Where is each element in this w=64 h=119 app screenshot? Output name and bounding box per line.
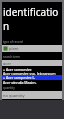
button[interactable]: no quantity	[2, 91, 62, 99]
staticText: Acer ginnala Maxim.	[3, 80, 37, 84]
button[interactable]: + Acer campestre	[2, 67, 62, 71]
staticText: type of record	[3, 40, 23, 44]
staticText: + Acer campestre	[3, 67, 32, 71]
staticText: search term	[3, 55, 20, 59]
staticText: quantity	[3, 86, 15, 90]
staticText: acer	[3, 61, 12, 66]
button[interactable]: + Acer campestre L.	[2, 75, 62, 80]
staticText: + Acer campestre L.	[3, 75, 36, 80]
button[interactable]: acer	[2, 60, 62, 66]
button[interactable]: Acer ginnala Maxim.	[2, 80, 62, 84]
button[interactable]: Acer campestre ssp. leiocarpum	[2, 71, 62, 75]
staticText: plant	[9, 46, 19, 51]
staticText: identification	[3, 5, 62, 33]
button[interactable]: plant	[2, 45, 62, 52]
staticText: Acer campestre ssp. leiocarpum	[3, 71, 56, 75]
staticText: no quantity	[3, 93, 25, 98]
